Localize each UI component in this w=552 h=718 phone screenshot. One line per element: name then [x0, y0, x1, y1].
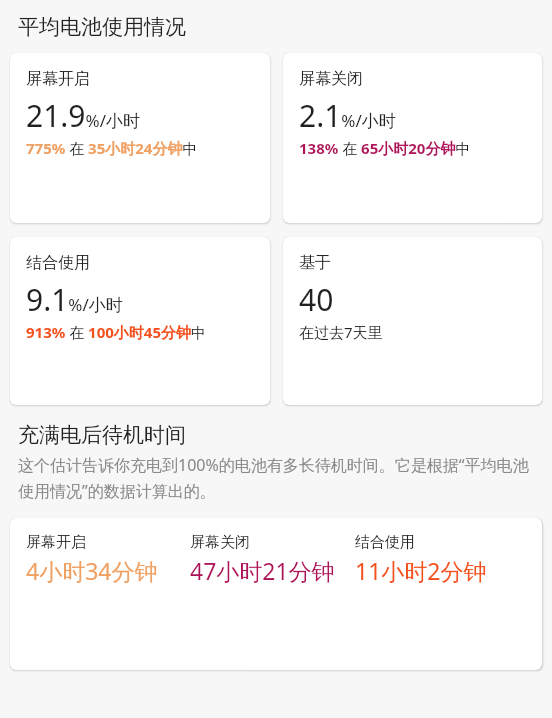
staticText: 11小时2分钟: [355, 555, 487, 586]
staticText: 2.1%/小时: [299, 95, 396, 136]
button[interactable]: 结合使用: [355, 533, 515, 586]
button[interactable]: 基于: [283, 237, 542, 405]
staticText: 40: [299, 279, 334, 320]
button[interactable]: 屏幕开启: [10, 53, 270, 223]
staticText: 屏幕关闭: [190, 533, 250, 552]
button[interactable]: 屏幕关闭: [283, 53, 542, 223]
staticText: 在过去7天里: [299, 322, 383, 342]
staticText: 平均电池使用情况: [18, 14, 186, 40]
button[interactable]: 屏幕开启: [26, 533, 190, 586]
staticText: 这个估计告诉你充电到100%的电池有多长待机时间。它是根据“平均电池使用情况”的…: [18, 454, 534, 501]
staticText: 4小时34分钟: [26, 555, 158, 586]
button[interactable]: 屏幕关闭: [190, 533, 355, 586]
staticText: 21.9%/小时: [26, 95, 140, 136]
staticText: 138% 在 65小时20分钟中: [299, 138, 471, 158]
staticText: 结合使用: [26, 253, 90, 273]
staticText: 47小时21分钟: [190, 555, 335, 586]
staticText: 9.1%/小时: [26, 279, 123, 320]
staticText: 屏幕开启: [26, 69, 90, 89]
staticText: 充满电后待机时间: [18, 422, 186, 448]
staticText: 913% 在 100小时45分钟中: [26, 322, 206, 342]
staticText: 屏幕开启: [26, 533, 86, 552]
button[interactable]: 结合使用: [10, 237, 270, 405]
staticText: 屏幕关闭: [299, 69, 363, 89]
staticText: 775% 在 35小时24分钟中: [26, 138, 198, 158]
button[interactable]: 屏幕开启: [10, 518, 542, 670]
staticText: 结合使用: [355, 533, 415, 552]
staticText: 基于: [299, 253, 331, 273]
